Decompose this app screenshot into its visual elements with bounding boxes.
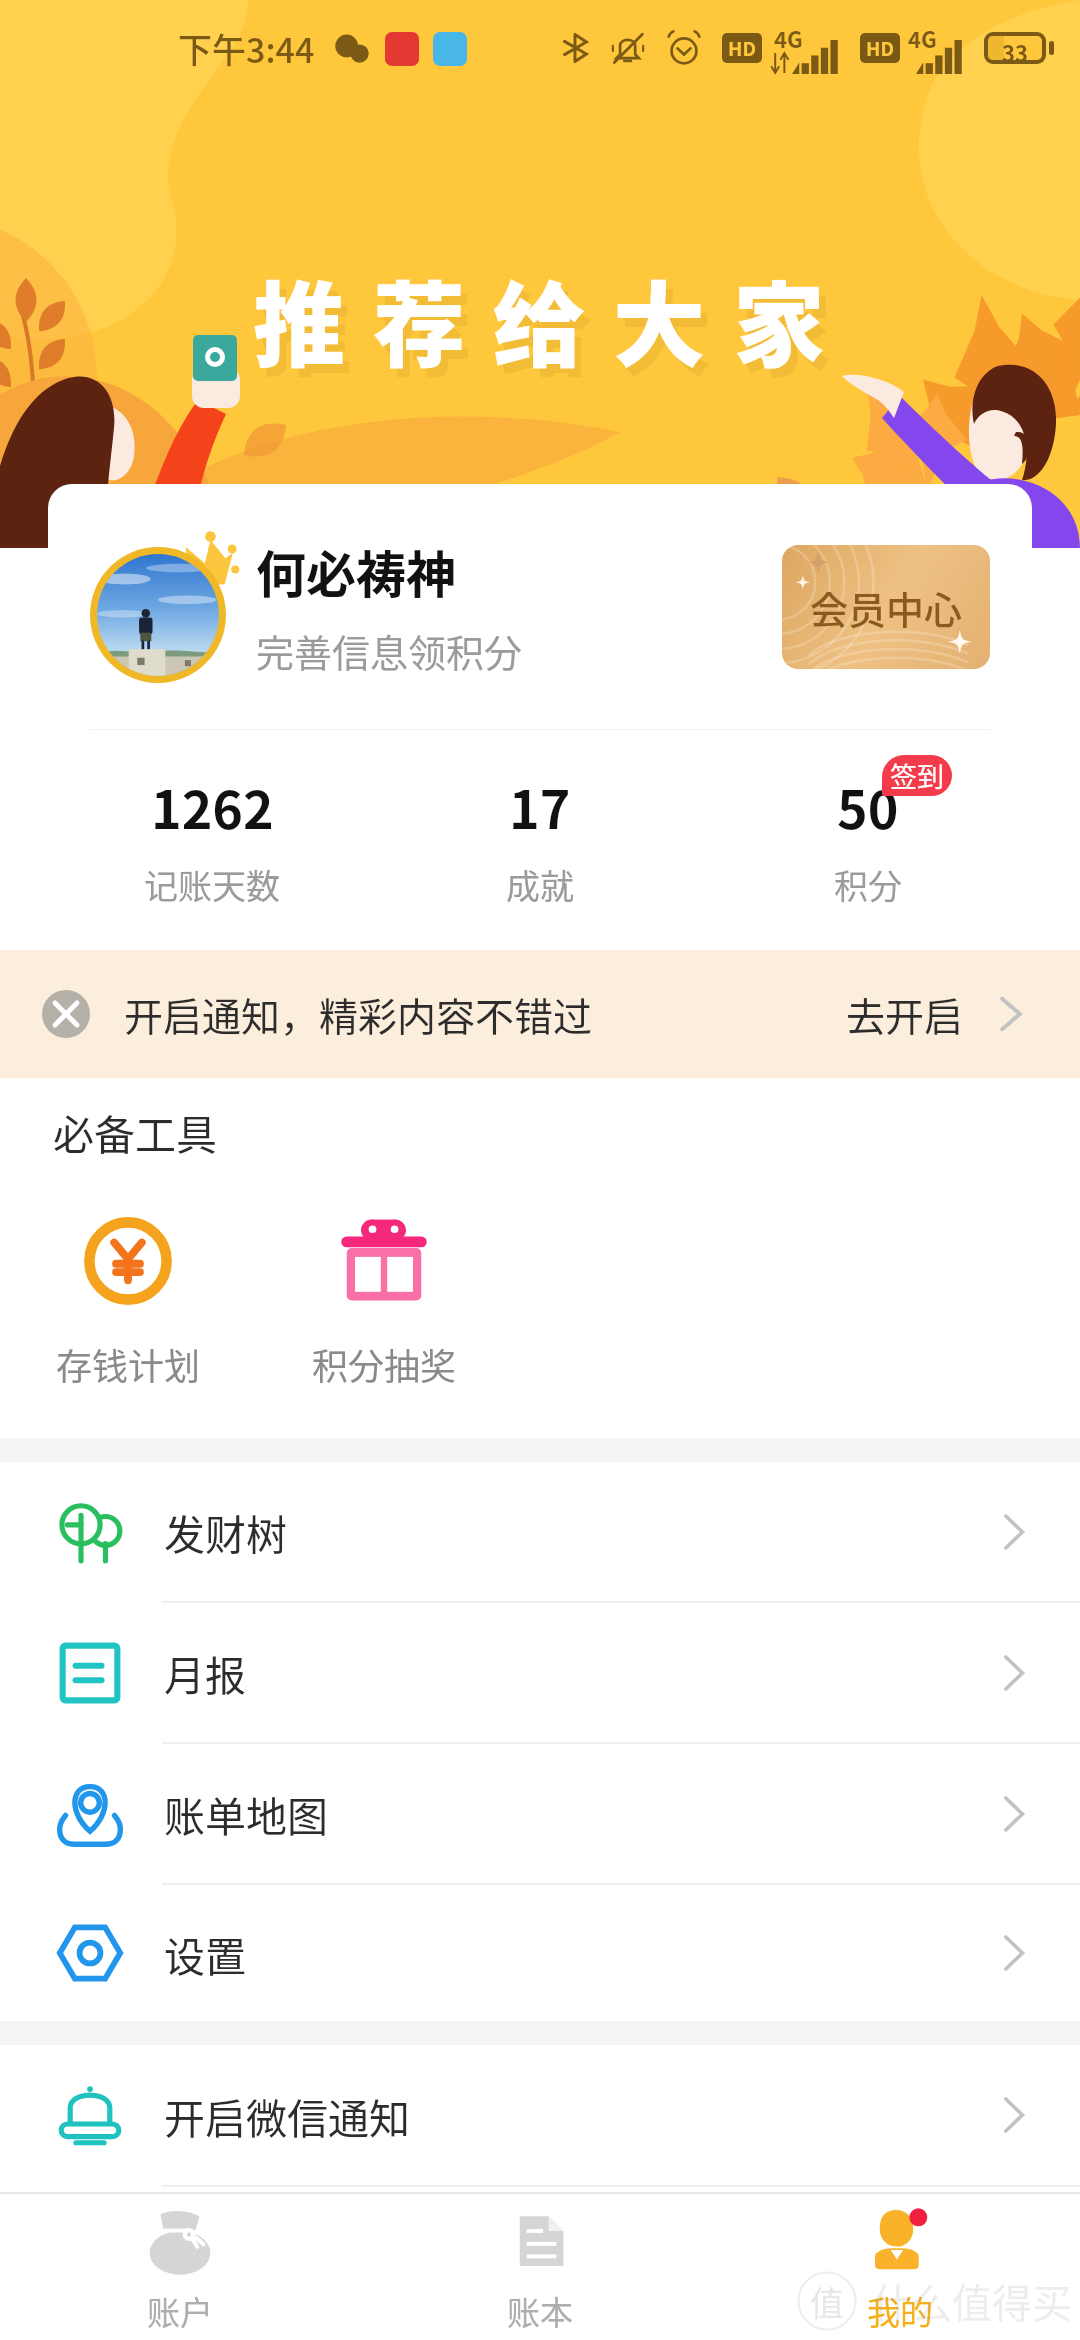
staticText: 账单地图 <box>164 1784 328 1843</box>
button[interactable]: 17 <box>376 730 704 925</box>
staticText: 记账天数 <box>144 860 280 909</box>
staticText: 开启通知，精彩内容不错过 <box>124 986 593 1042</box>
staticText: 去开启 <box>846 986 964 1042</box>
button[interactable]: 设置 <box>0 1885 1080 2021</box>
staticText: 什么值得买 <box>872 2272 1072 2330</box>
staticText: HD <box>866 34 894 62</box>
staticText: 必备工具 <box>53 1102 217 1161</box>
staticText: 积分 <box>834 860 902 909</box>
other: 关闭 <box>42 990 90 1038</box>
button[interactable]: 存钱计划 <box>0 1215 256 1390</box>
staticText: 推荐给大家 <box>253 252 854 385</box>
staticText: 推荐给大家 <box>260 261 861 394</box>
staticText: 存钱计划 <box>56 1338 201 1390</box>
staticText: 完善信息领积分 <box>256 623 523 678</box>
button[interactable]: 开启微信通知 <box>0 2045 1080 2185</box>
staticText: 账本 <box>507 2287 573 2335</box>
staticText: 33 <box>1002 36 1028 60</box>
button[interactable]: 何必祷神 <box>48 484 1032 925</box>
button[interactable]: 1262 <box>48 730 376 925</box>
staticText: 设置 <box>164 1924 246 1983</box>
button[interactable]: 50 <box>704 730 1032 925</box>
button[interactable]: 积分抽奖 <box>256 1215 512 1390</box>
staticText: 4G <box>908 22 937 54</box>
staticText: HD <box>728 34 756 62</box>
staticText: 1262 <box>151 769 274 844</box>
button[interactable]: 账单地图 <box>0 1744 1080 1883</box>
button[interactable]: 关闭 <box>0 950 1080 1078</box>
staticText: 签到 <box>890 756 944 795</box>
staticText: 50 <box>837 769 899 844</box>
staticText: 何必祷神 <box>256 535 456 607</box>
staticText: 4G <box>774 22 803 54</box>
button[interactable]: 月报 <box>0 1603 1080 1742</box>
staticText: 我的 <box>867 2287 933 2335</box>
staticText: 月报 <box>164 1643 246 1702</box>
button[interactable]: 我的 <box>720 2194 1080 2340</box>
staticText: 会员中心 <box>810 580 963 635</box>
staticText: 发财树 <box>164 1502 287 1561</box>
button[interactable]: 会员中心 <box>782 545 990 669</box>
staticText: 值 <box>810 2277 844 2326</box>
button[interactable]: 账本 <box>360 2194 720 2340</box>
staticText: 17 <box>509 769 571 844</box>
staticText: 下午3:44 <box>178 24 315 73</box>
staticText: 成就 <box>506 860 574 909</box>
staticText: 开启微信通知 <box>164 2086 410 2145</box>
staticText: 账户 <box>147 2287 213 2335</box>
button[interactable]: 发财树 <box>0 1462 1080 1601</box>
button[interactable]: 账户 <box>0 2194 360 2340</box>
staticText: 积分抽奖 <box>312 1338 457 1390</box>
